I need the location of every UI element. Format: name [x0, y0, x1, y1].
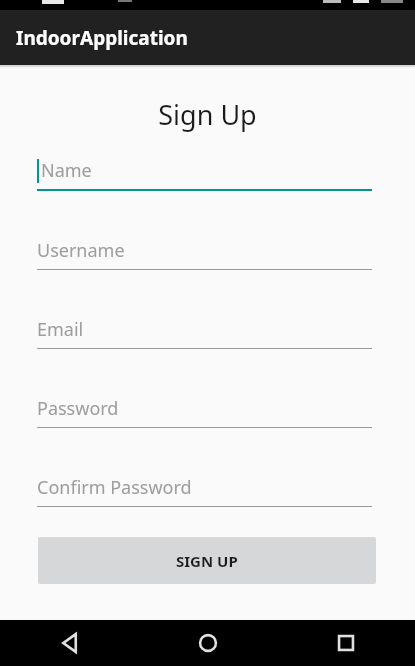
button[interactable]: Username	[0, 191, 415, 270]
button[interactable]: Password	[0, 349, 415, 428]
staticText: Sign Up	[158, 96, 257, 133]
button[interactable]: Email	[0, 270, 415, 349]
button[interactable]: Back	[0, 620, 139, 666]
button[interactable]: Home	[139, 620, 277, 666]
button[interactable]: Confirm Password	[0, 428, 415, 507]
staticText: IndoorApplication	[16, 25, 188, 51]
staticText: Password	[37, 396, 119, 421]
button[interactable]: SIGN UP	[38, 537, 376, 584]
button[interactable]: IndoorApplication	[0, 10, 415, 65]
staticText: Confirm Password	[37, 475, 192, 500]
staticText: SIGN UP	[176, 551, 238, 571]
button[interactable]: Name	[0, 133, 415, 191]
staticText: Email	[37, 317, 84, 342]
staticText: Name	[41, 158, 92, 183]
button[interactable]: Recent apps	[277, 620, 415, 666]
staticText: Username	[37, 238, 125, 263]
